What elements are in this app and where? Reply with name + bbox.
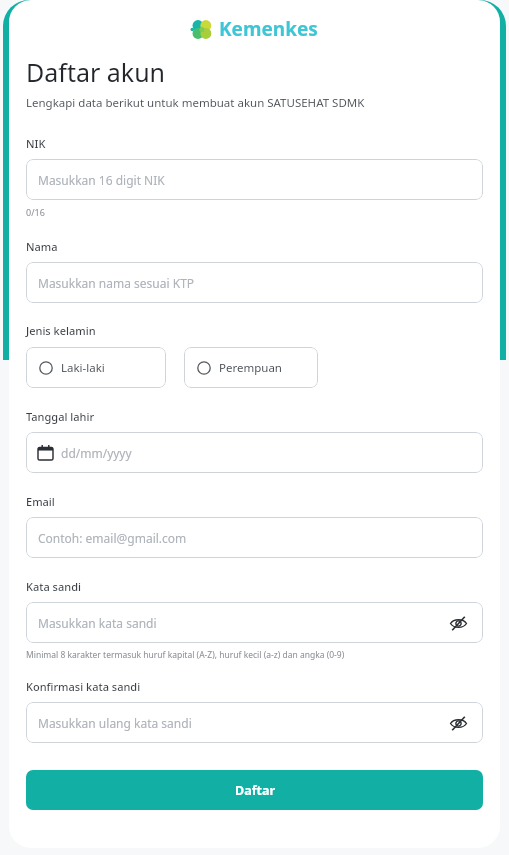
- staticText: Email: [26, 494, 55, 509]
- staticText: Tanggal lahir: [26, 409, 95, 424]
- button[interactable]: Masukkan ulang kata sandi: [26, 702, 483, 743]
- staticText: NIK: [26, 136, 46, 151]
- staticText: Daftar: [235, 782, 275, 799]
- staticText: Daftar akun: [26, 55, 166, 89]
- staticText: Kata sandi: [26, 579, 81, 594]
- button[interactable]: Masukkan nama sesuai KTP: [26, 262, 483, 303]
- staticText: dd/mm/yyyy: [61, 445, 132, 461]
- staticText: Lengkapi data berikut untuk membuat akun…: [26, 95, 365, 111]
- staticText: 0/16: [26, 206, 45, 218]
- staticText: Nama: [26, 239, 58, 254]
- staticText: Masukkan 16 digit NIK: [38, 172, 165, 188]
- button[interactable]: Laki-laki: [26, 347, 166, 388]
- button[interactable]: Perempuan: [184, 347, 318, 388]
- staticText: Perempuan: [219, 360, 282, 376]
- button[interactable]: Tampilkan kata sandi: [445, 610, 471, 636]
- staticText: Laki-laki: [61, 360, 105, 376]
- staticText: Jenis kelamin: [26, 323, 96, 338]
- button[interactable]: Tampilkan kata sandi: [445, 710, 471, 736]
- button[interactable]: Masukkan kata sandi: [26, 602, 483, 643]
- staticText: Kemenkes: [219, 16, 318, 42]
- staticText: Masukkan kata sandi: [38, 615, 157, 631]
- staticText: Minimal 8 karakter termasuk huruf kapita…: [26, 649, 345, 661]
- button[interactable]: dd/mm/yyyy: [26, 432, 483, 473]
- staticText: Konfirmasi kata sandi: [26, 679, 141, 694]
- button[interactable]: Contoh: email@gmail.com: [26, 517, 483, 558]
- staticText: Contoh: email@gmail.com: [38, 530, 187, 546]
- button[interactable]: Masukkan 16 digit NIK: [26, 159, 483, 200]
- staticText: Masukkan nama sesuai KTP: [38, 275, 195, 291]
- staticText: Masukkan ulang kata sandi: [38, 715, 192, 731]
- button[interactable]: Daftar: [26, 770, 483, 810]
